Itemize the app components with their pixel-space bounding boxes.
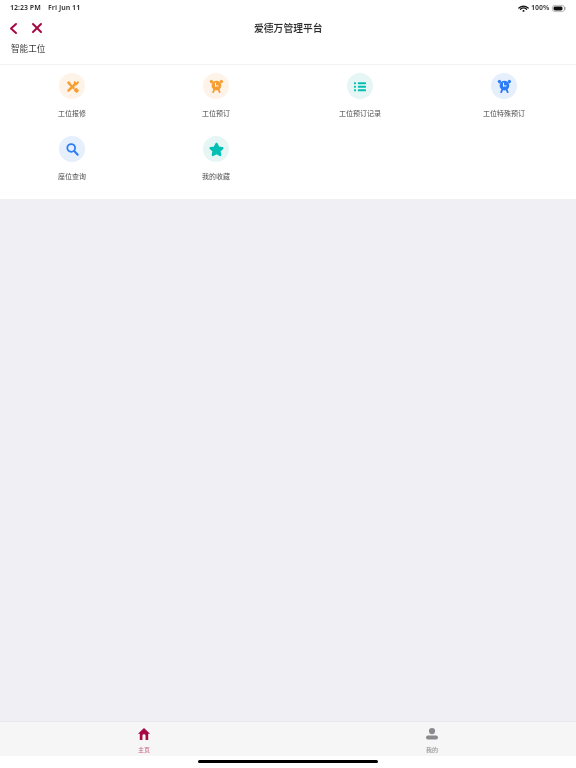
staticText: 我的 — [426, 745, 439, 754]
staticText: 100% — [531, 3, 550, 13]
button[interactable]: Back — [2, 17, 24, 39]
staticText: Fri Jun 11 — [48, 3, 81, 13]
staticText: 爱德万管理平台 — [254, 21, 323, 35]
staticText: 工位预订记录 — [339, 108, 381, 118]
button[interactable]: 主页 — [0, 722, 288, 756]
staticText: 工位报修 — [58, 108, 86, 118]
button[interactable]: 我的收藏 — [144, 128, 288, 191]
button[interactable]: 工位报修 — [0, 65, 144, 128]
staticText: 智能工位 — [11, 42, 46, 54]
staticText: 我的收藏 — [202, 171, 230, 181]
staticText: 主页 — [138, 745, 151, 754]
button[interactable]: 我的 — [288, 722, 576, 756]
button[interactable]: 工位预订记录 — [288, 65, 432, 128]
button[interactable]: 座位查询 — [0, 128, 144, 191]
button[interactable]: 工位特殊预订 — [432, 65, 576, 128]
staticText: 12:23 PM — [10, 3, 41, 13]
staticText: 工位预订 — [202, 108, 230, 118]
button[interactable]: 工位预订 — [144, 65, 288, 128]
staticText: 工位特殊预订 — [483, 108, 525, 118]
staticText: 座位查询 — [58, 171, 86, 181]
button[interactable]: Close — [26, 17, 48, 39]
